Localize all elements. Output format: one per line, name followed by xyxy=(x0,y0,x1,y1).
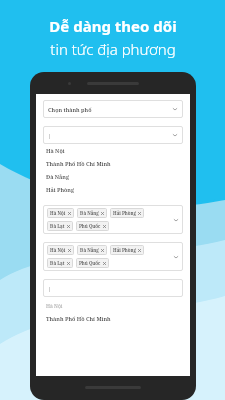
staticText: Đà Nẵng xyxy=(46,173,69,180)
other: Remove Đà Nẵng xyxy=(101,249,104,252)
staticText: Thành Phố Hồ Chí Minh xyxy=(46,160,111,167)
button[interactable]: Hải Phòng xyxy=(110,208,144,218)
other: Remove Hải Phòng xyxy=(138,249,141,252)
button[interactable]: | xyxy=(43,279,183,297)
button[interactable]: Hà Nội xyxy=(47,245,74,255)
other: Remove Phú Quốc xyxy=(103,262,106,265)
button[interactable]: Hà Nội xyxy=(43,144,183,157)
staticText: tin tức địa phương xyxy=(50,39,176,59)
other: Remove Đà Lạt xyxy=(67,262,70,265)
other: Expand xyxy=(173,217,179,223)
other: Remove Đà Lạt xyxy=(67,225,70,228)
other: Remove Hà Nội xyxy=(68,212,71,215)
other: Remove Hải Phòng xyxy=(138,212,141,215)
other: Expand xyxy=(173,254,179,260)
staticText: Hà Nội xyxy=(50,247,66,253)
button[interactable]: Hà Nội xyxy=(43,301,63,312)
staticText: | xyxy=(48,285,52,292)
button[interactable]: Chọn thành phố xyxy=(43,100,183,118)
staticText: Hải Phòng xyxy=(113,210,136,216)
staticText: Hà Nội xyxy=(46,147,65,154)
other: Remove Hà Nội xyxy=(68,249,71,252)
other: Remove Phú Quốc xyxy=(103,225,106,228)
staticText: Đà Nẵng xyxy=(80,247,99,253)
button[interactable]: Đà Lạt xyxy=(47,221,73,231)
other: Expand xyxy=(172,106,178,112)
staticText: Đà Lạt xyxy=(50,260,65,266)
staticText: Phú Quốc xyxy=(79,260,101,266)
button[interactable]: Phú Quốc xyxy=(76,258,109,268)
other: Remove Đà Nẵng xyxy=(101,212,104,215)
button[interactable]: | xyxy=(43,126,183,144)
staticText: Hải Phòng xyxy=(46,186,74,193)
staticText: Đà Nẵng xyxy=(80,210,99,216)
button[interactable]: Hà Nội xyxy=(43,205,183,234)
staticText: | xyxy=(48,132,52,139)
staticText: Chọn thành phố xyxy=(48,106,92,113)
button[interactable]: Thành Phố Hồ Chí Minh xyxy=(43,157,183,170)
staticText: Dễ dàng theo dõi xyxy=(49,16,177,36)
staticText: Hải Phòng xyxy=(113,247,136,253)
staticText: Hà Nội xyxy=(50,210,66,216)
button[interactable]: Đà Nẵng xyxy=(43,170,183,183)
staticText: Đà Lạt xyxy=(50,223,65,229)
other: Expand xyxy=(172,132,178,138)
button[interactable]: Hà Nội xyxy=(47,208,74,218)
button[interactable]: Đà Lạt xyxy=(47,258,73,268)
staticText: Phú Quốc xyxy=(79,223,101,229)
button[interactable]: Hải Phòng xyxy=(110,245,144,255)
button[interactable]: Đà Nẵng xyxy=(77,208,107,218)
button[interactable]: Hải Phòng xyxy=(43,183,183,196)
button[interactable]: Đà Nẵng xyxy=(77,245,107,255)
button[interactable]: Hà Nội xyxy=(43,242,183,271)
button[interactable]: Phú Quốc xyxy=(76,221,109,231)
button[interactable]: Thành Phố Hồ Chí Minh xyxy=(43,315,111,322)
